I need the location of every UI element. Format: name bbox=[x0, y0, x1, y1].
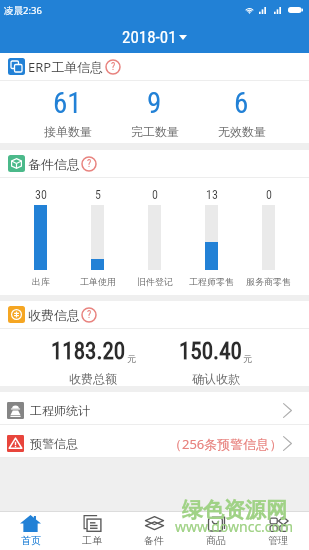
staticText: 元 bbox=[243, 353, 252, 364]
staticText: 收费信息 bbox=[28, 307, 80, 323]
button[interactable]: 6 bbox=[198, 81, 285, 143]
staticText: ERP工单信息 bbox=[28, 58, 104, 76]
staticText: 旧件登记 bbox=[137, 276, 173, 287]
staticText: 工程师零售 bbox=[189, 276, 234, 287]
button[interactable]: 0 bbox=[240, 178, 297, 295]
staticText: 9 bbox=[147, 86, 162, 120]
staticText: 30 bbox=[35, 188, 47, 202]
button[interactable]: 预警信息 bbox=[0, 425, 309, 457]
button[interactable]: 首页 bbox=[0, 512, 61, 550]
button[interactable]: 30 bbox=[12, 178, 69, 295]
staticText: 首页 bbox=[21, 534, 41, 547]
staticText: 6 bbox=[234, 86, 249, 120]
staticText: 备件 bbox=[144, 534, 164, 547]
button[interactable]: 说明 bbox=[105, 59, 121, 75]
button[interactable]: 管理 bbox=[247, 512, 309, 550]
staticText: 0 bbox=[152, 188, 158, 202]
staticText: 工程师统计 bbox=[30, 403, 90, 418]
staticText: 预警信息 bbox=[30, 436, 78, 451]
staticText: 工单 bbox=[82, 534, 102, 547]
button[interactable]: 工单 bbox=[61, 512, 123, 550]
staticText: 凌晨2:36 bbox=[4, 4, 42, 17]
button[interactable]: 5 bbox=[69, 178, 126, 295]
staticText: 绿色资源网 bbox=[182, 497, 287, 523]
staticText: 2018-01 bbox=[122, 27, 177, 47]
button[interactable]: 说明 bbox=[81, 307, 97, 323]
staticText: （256条预警信息） bbox=[169, 435, 283, 453]
button[interactable]: 2018-01 bbox=[122, 27, 187, 47]
staticText: 61 bbox=[53, 86, 82, 120]
staticText: 收费总额 bbox=[69, 371, 117, 386]
staticText: 确认收款 bbox=[192, 371, 240, 386]
button[interactable]: 1183.20 bbox=[32, 329, 154, 386]
staticText: 5 bbox=[95, 188, 101, 202]
button[interactable]: 150.40 bbox=[154, 329, 277, 386]
button[interactable]: 13 bbox=[183, 178, 240, 295]
staticText: www.downcc.com bbox=[175, 517, 294, 536]
staticText: 0 bbox=[266, 188, 272, 202]
staticText: ? bbox=[111, 61, 116, 73]
staticText: 出库 bbox=[32, 276, 50, 287]
button[interactable]: 61 bbox=[24, 81, 111, 143]
staticText: 元 bbox=[127, 353, 136, 364]
button[interactable]: 9 bbox=[111, 81, 198, 143]
button[interactable]: 备件 bbox=[123, 512, 185, 550]
staticText: 150.40 bbox=[179, 338, 242, 365]
staticText: ? bbox=[87, 309, 92, 321]
button[interactable]: 0 bbox=[126, 178, 183, 295]
staticText: 完工数量 bbox=[131, 124, 179, 139]
staticText: 无效数量 bbox=[218, 124, 266, 139]
staticText: 管理 bbox=[268, 534, 288, 547]
staticText: 1183.20 bbox=[51, 338, 126, 365]
staticText: 商品 bbox=[206, 534, 226, 547]
staticText: 13 bbox=[206, 188, 218, 202]
button[interactable]: 工程师统计 bbox=[0, 392, 309, 424]
staticText: 接单数量 bbox=[44, 124, 92, 139]
staticText: 工单使用 bbox=[80, 276, 116, 287]
staticText: 服务商零售 bbox=[246, 276, 291, 287]
staticText: 备件信息 bbox=[28, 156, 80, 172]
staticText: ? bbox=[87, 158, 92, 170]
button[interactable]: 商品 bbox=[185, 512, 247, 550]
button[interactable]: 说明 bbox=[81, 156, 97, 172]
